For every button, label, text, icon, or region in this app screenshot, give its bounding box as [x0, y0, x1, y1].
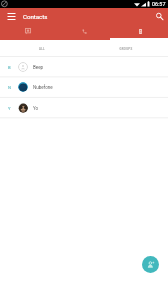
- button[interactable]: Add contact: [142, 256, 159, 273]
- staticText: Beep: [33, 65, 44, 70]
- staticText: Contacts: [23, 13, 48, 20]
- staticText: Nubefone: [33, 85, 53, 90]
- staticText: 06:57: [152, 1, 166, 7]
- button[interactable]: ALL: [0, 40, 84, 56]
- button[interactable]: Y: [0, 97, 168, 117]
- button[interactable]: Calls: [56, 24, 112, 40]
- button[interactable]: Contacts: [112, 24, 168, 40]
- button[interactable]: Open navigation menu: [0, 8, 23, 24]
- button[interactable]: Messages: [0, 24, 56, 40]
- button[interactable]: B: [0, 56, 168, 76]
- button[interactable]: N: [0, 76, 168, 96]
- button[interactable]: GROUPS: [84, 40, 168, 56]
- staticText: ALL: [39, 47, 45, 50]
- button[interactable]: Search: [151, 8, 168, 24]
- staticText: Y: [8, 106, 11, 111]
- staticText: N: [8, 85, 11, 90]
- staticText: B: [8, 65, 11, 70]
- staticText: Yo: [33, 106, 39, 111]
- staticText: GROUPS: [119, 47, 133, 50]
